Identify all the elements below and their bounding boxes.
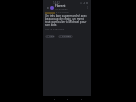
button[interactable]: Nav [78, 96, 84, 102]
button[interactable]: More options [85, 5, 90, 10]
button[interactable]: Partager [58, 35, 73, 38]
button[interactable]: Nav [51, 96, 57, 102]
button[interactable]: Back [45, 5, 50, 10]
staticText: Florent [55, 4, 66, 8]
staticText: Partager [62, 35, 72, 38]
button[interactable]: Nav [64, 96, 70, 102]
staticText: Local Guide [55, 8, 68, 11]
staticText: il y a 2 mois [56, 11, 69, 14]
button[interactable]: Utile [45, 35, 55, 38]
staticText: Utile [49, 35, 54, 38]
staticText: 14:32 [53, 1, 60, 5]
staticText: Un très bon supermarché avec beaucoup de… [45, 14, 89, 27]
staticText: Voir la traduction [45, 27, 65, 30]
